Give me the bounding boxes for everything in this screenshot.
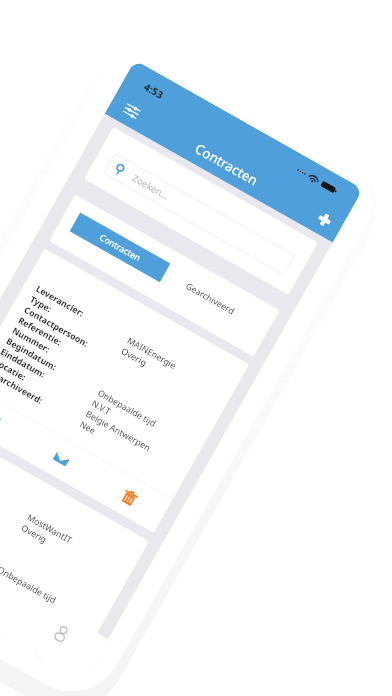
button[interactable]: Profiel: [7, 596, 108, 683]
staticText: Leverancier:: [34, 283, 86, 319]
staticText: N.V.T: [90, 397, 113, 417]
staticText: Overig: [19, 522, 49, 546]
staticText: Nee: [78, 418, 98, 437]
staticText: Referentie:: [16, 314, 64, 348]
staticText: MostWantIT: [25, 511, 75, 546]
button[interactable]: Verwijderen: [26, 638, 58, 665]
staticText: 4:53: [142, 80, 166, 101]
button[interactable]: Leverancier:: [0, 425, 149, 677]
staticText: Onbepaalde tijd: [0, 563, 58, 606]
button[interactable]: Bewerken: [0, 400, 13, 440]
staticText: Gearchiveerd:: [0, 366, 45, 406]
button[interactable]: Zoeken...: [103, 153, 296, 276]
staticText: Contracten: [192, 139, 261, 189]
staticText: Nummer:: [10, 324, 52, 355]
button[interactable]: Gearchiveerd: [160, 263, 260, 333]
button[interactable]: Contract toevoegen: [302, 197, 346, 241]
staticText: MAINEnergie: [125, 334, 178, 371]
button[interactable]: Contracten: [70, 212, 170, 282]
staticText: Gearchiveerd: [184, 280, 237, 317]
staticText: Overig: [119, 345, 149, 369]
staticText: Onbepaalde tijd: [96, 387, 158, 429]
staticText: Belgie Antwerpen: [84, 408, 153, 454]
staticText: Einddatum:: [0, 345, 48, 381]
staticText: Belgie Antwerpen: [0, 584, 53, 631]
staticText: N.V.T: [0, 574, 13, 594]
staticText: Type:: [28, 293, 54, 315]
staticText: Contracten: [98, 231, 143, 264]
button[interactable]: Filter: [110, 89, 154, 132]
staticText: Contactpersoon:: [22, 303, 91, 349]
button[interactable]: Contracten: [0, 553, 32, 640]
staticText: Locatie:: [0, 356, 28, 383]
staticText: Zoeken...: [130, 171, 171, 202]
button[interactable]: Verwijderen: [109, 478, 149, 518]
staticText: Begindatum:: [4, 335, 59, 373]
button[interactable]: Mailen: [41, 439, 81, 479]
button[interactable]: Leverancier:: [0, 248, 249, 533]
